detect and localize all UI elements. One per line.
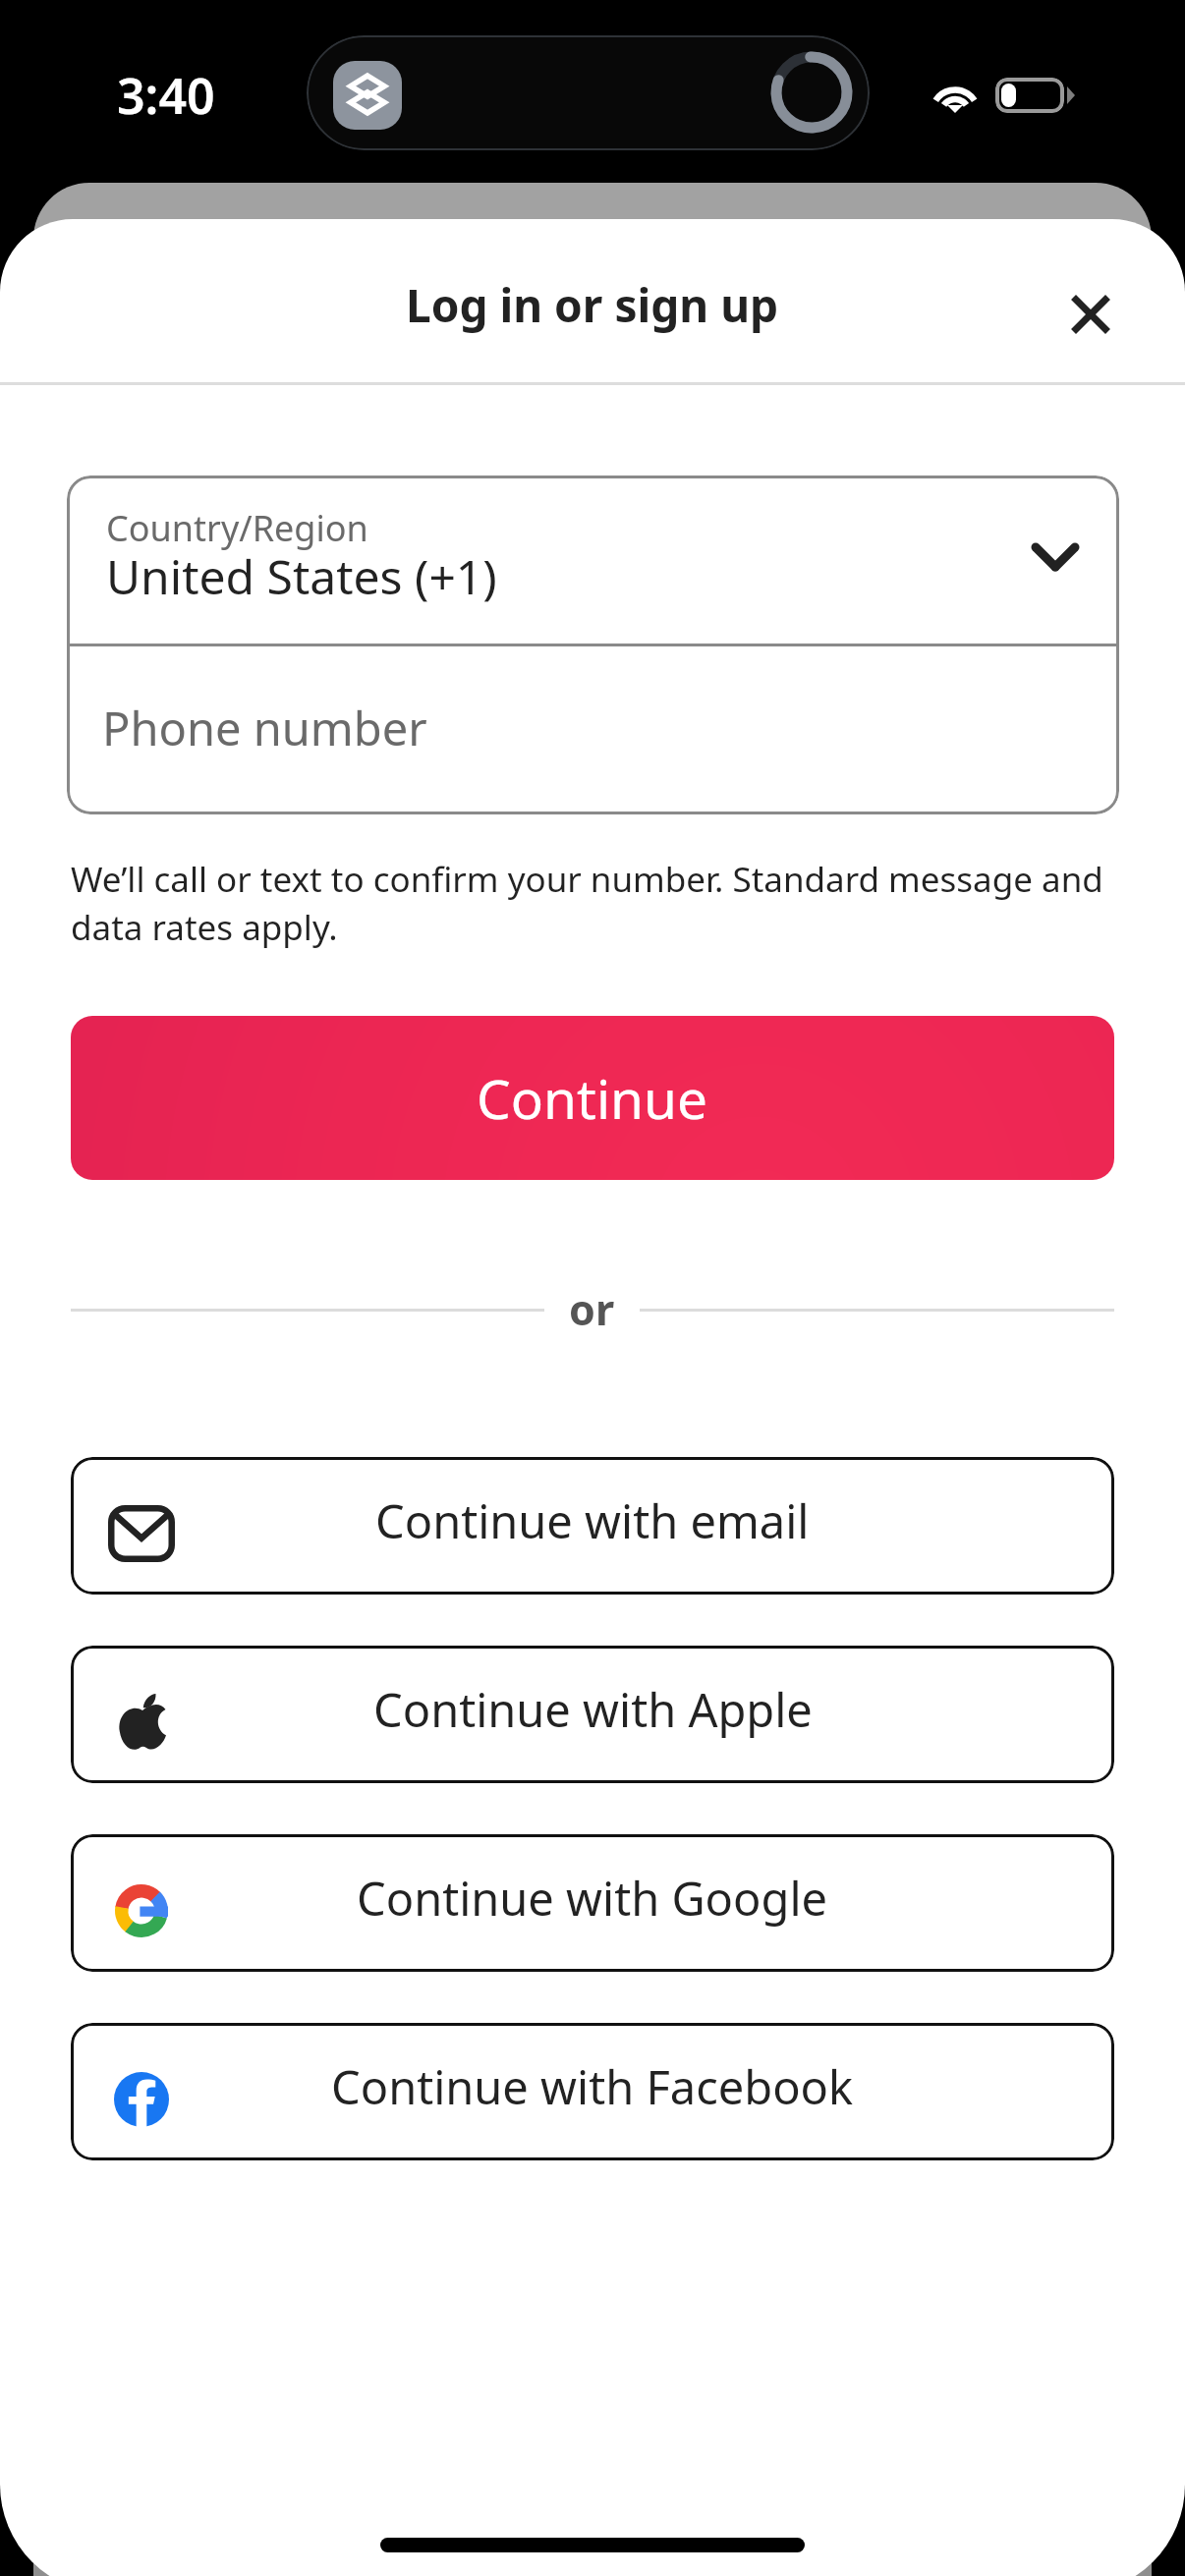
staticText: We’ll call or text to confirm your numbe… xyxy=(71,856,1114,950)
staticText: United States (+1) xyxy=(106,544,497,608)
button[interactable]: Continue with Google xyxy=(71,1834,1114,1972)
staticText: Continue with email xyxy=(375,1489,810,1552)
staticText: or xyxy=(569,1280,615,1338)
button[interactable]: Phone number xyxy=(67,646,1119,814)
staticText: Continue with Facebook xyxy=(331,2055,854,2118)
staticText: Phone number xyxy=(102,697,427,759)
button[interactable]: Continue with Apple xyxy=(71,1646,1114,1783)
staticText: Country/Region xyxy=(106,504,368,552)
button[interactable]: Close xyxy=(1055,279,1126,350)
staticText: 3:40 xyxy=(117,62,215,129)
staticText: Log in or sign up xyxy=(406,274,779,336)
staticText: Continue xyxy=(477,1061,708,1135)
button[interactable]: Continue with email xyxy=(71,1457,1114,1595)
button[interactable]: Country/Region xyxy=(67,476,1119,644)
staticText: Continue with Apple xyxy=(373,1678,813,1741)
button[interactable]: Continue with Facebook xyxy=(71,2023,1114,2160)
button[interactable]: Continue xyxy=(71,1016,1114,1180)
staticText: Continue with Google xyxy=(357,1867,828,1930)
